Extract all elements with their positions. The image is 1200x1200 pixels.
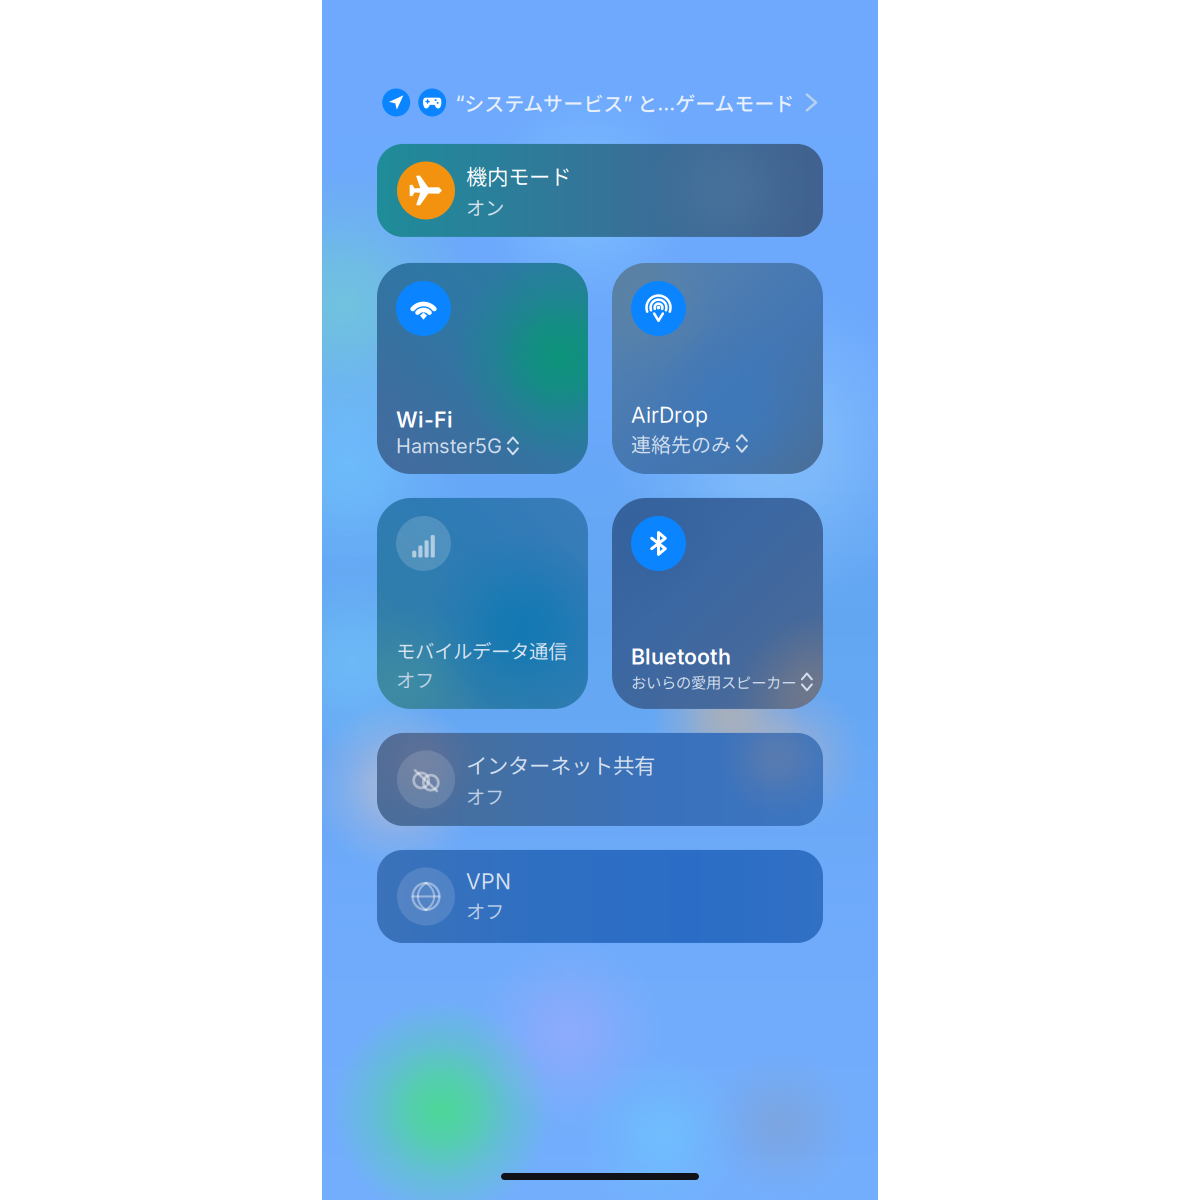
button[interactable]: インターネット共有 — [377, 733, 823, 826]
staticText: 機内モード — [466, 160, 571, 191]
staticText: “システムサービス” と…ゲームモード — [455, 88, 794, 117]
staticText: Wi-Fi — [396, 407, 453, 433]
staticText: Hamster5G — [396, 434, 502, 458]
staticText: インターネット共有 — [466, 749, 655, 780]
staticText: オフ — [466, 782, 504, 810]
button[interactable]: AirDrop — [612, 263, 823, 474]
button[interactable]: VPN — [377, 850, 823, 943]
staticText: オン — [466, 193, 504, 221]
staticText: モバイルデータ通信 — [396, 636, 567, 664]
button[interactable]: モバイルデータ通信 — [377, 498, 588, 709]
staticText: VPN — [466, 869, 511, 894]
staticText: AirDrop — [631, 402, 708, 428]
staticText: Bluetooth — [631, 644, 731, 670]
button[interactable]: 機内モード — [377, 144, 823, 237]
button[interactable]: Wi-Fi — [377, 263, 588, 474]
staticText: おいらの愛用スピーカー — [631, 671, 796, 693]
staticText: オフ — [466, 896, 504, 924]
staticText: 連絡先のみ — [631, 429, 731, 458]
button[interactable]: “システムサービス” と…ゲームモード — [382, 88, 818, 117]
staticText: オフ — [396, 665, 434, 693]
button[interactable]: Bluetooth — [612, 498, 823, 709]
